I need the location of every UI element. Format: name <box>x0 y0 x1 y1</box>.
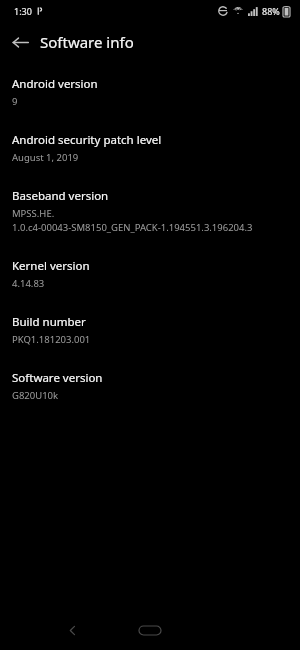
staticText: G820U10k <box>12 389 59 402</box>
button[interactable]: Software version <box>0 361 300 411</box>
staticText: Android security patch level <box>12 132 162 148</box>
button[interactable]: Back <box>56 614 88 646</box>
button[interactable]: Android version <box>0 67 300 117</box>
button[interactable]: Android security patch level <box>0 123 300 173</box>
staticText: Software info <box>40 32 134 52</box>
button[interactable]: Baseband version <box>0 179 300 243</box>
staticText: 9 <box>12 95 18 108</box>
button[interactable]: Kernel version <box>0 249 300 299</box>
staticText: Android version <box>12 76 98 92</box>
button[interactable]: Build number <box>0 305 300 355</box>
staticText: Baseband version <box>12 188 109 204</box>
staticText: August 1, 2019 <box>12 151 79 164</box>
staticText: 1:30 <box>14 5 32 17</box>
button[interactable]: Home <box>130 617 170 643</box>
button[interactable]: Back <box>0 22 40 62</box>
staticText: 1.0.c4-00043-SM8150_GEN_PACK-1.194551.3.… <box>12 221 253 234</box>
staticText: 4.14.83 <box>12 277 45 290</box>
staticText: PKQ1.181203.001 <box>12 333 91 346</box>
staticText: 88% <box>262 5 280 17</box>
staticText: MPSS.HE. <box>12 207 55 220</box>
staticText: Kernel version <box>12 258 90 274</box>
staticText: Software version <box>12 370 103 386</box>
staticText: Build number <box>12 314 86 330</box>
